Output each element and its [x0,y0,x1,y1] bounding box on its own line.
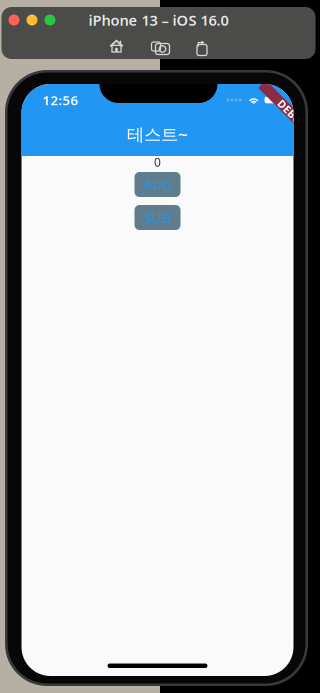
button[interactable]: SUB [134,205,180,230]
staticText: 12:56 [42,91,78,109]
button[interactable]: Screenshot [145,35,171,57]
staticText: ADD [143,176,172,193]
staticText: SUB [144,209,170,226]
staticText: 테스트~ [127,122,188,145]
staticText: DEBUG [274,107,311,122]
button[interactable]: ADD [134,172,180,197]
staticText: 0 [154,154,161,170]
staticText: iPhone 13 – iOS 16.0 [88,10,228,30]
button[interactable]: Home [103,35,129,57]
button[interactable]: Record screen [187,35,213,57]
